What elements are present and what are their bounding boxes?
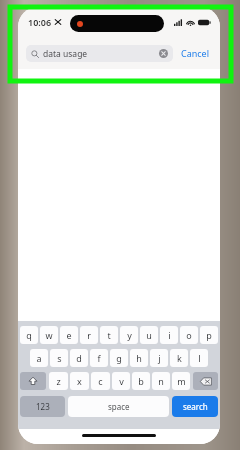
button[interactable]: 123: [20, 396, 65, 417]
staticText: i: [168, 329, 171, 341]
button[interactable]: b: [132, 372, 150, 390]
staticText: e: [66, 329, 72, 341]
button[interactable]: Clear text: [159, 49, 168, 58]
button[interactable]: a: [30, 349, 48, 367]
button[interactable]: g: [110, 349, 128, 367]
button[interactable]: c: [91, 372, 110, 390]
button[interactable]: j: [150, 349, 168, 367]
button[interactable]: q: [20, 326, 38, 344]
staticText: c: [98, 375, 103, 387]
staticText: t: [107, 329, 111, 341]
staticText: v: [119, 375, 124, 387]
staticText: y: [127, 329, 132, 341]
button[interactable]: m: [172, 372, 190, 390]
button[interactable]: d: [70, 349, 88, 367]
button[interactable]: f: [90, 349, 108, 367]
staticText: x: [77, 375, 82, 387]
button[interactable]: Shift: [20, 372, 46, 390]
button[interactable]: x: [70, 372, 89, 390]
staticText: r: [87, 329, 91, 341]
staticText: s: [57, 352, 62, 364]
button[interactable]: e: [60, 326, 78, 344]
button[interactable]: search: [172, 396, 218, 417]
button[interactable]: v: [112, 372, 130, 390]
button[interactable]: w: [40, 326, 58, 344]
staticText: o: [186, 329, 192, 341]
button[interactable]: k: [170, 349, 188, 367]
button[interactable]: data usage: [26, 45, 173, 62]
staticText: z: [56, 375, 61, 387]
button[interactable]: Backspace: [193, 372, 218, 390]
button[interactable]: i: [160, 326, 178, 344]
button[interactable]: n: [152, 372, 170, 390]
button[interactable]: Cancel: [179, 43, 212, 63]
staticText: g: [116, 352, 122, 364]
staticText: a: [36, 352, 42, 364]
staticText: w: [45, 329, 53, 341]
staticText: Cancel: [181, 47, 210, 59]
staticText: j: [158, 352, 161, 364]
button[interactable]: y: [120, 326, 138, 344]
button[interactable]: s: [50, 349, 68, 367]
staticText: q: [26, 329, 32, 341]
staticText: u: [146, 329, 152, 341]
button[interactable]: p: [200, 326, 218, 344]
staticText: h: [136, 352, 142, 364]
staticText: f: [97, 352, 101, 364]
button[interactable]: r: [80, 326, 98, 344]
button[interactable]: o: [180, 326, 198, 344]
staticText: 123: [36, 401, 50, 412]
staticText: m: [177, 375, 186, 387]
staticText: data usage: [43, 48, 88, 60]
staticText: k: [177, 352, 182, 364]
staticText: b: [138, 375, 144, 387]
staticText: 10:06: [28, 16, 52, 28]
button[interactable]: t: [100, 326, 118, 344]
button[interactable]: z: [49, 372, 68, 390]
staticText: d: [76, 352, 82, 364]
button[interactable]: h: [130, 349, 148, 367]
button[interactable]: l: [190, 349, 208, 367]
staticText: space: [108, 401, 130, 412]
staticText: search: [183, 401, 208, 412]
staticText: p: [206, 329, 212, 341]
button[interactable]: u: [140, 326, 158, 344]
staticText: l: [198, 352, 201, 364]
button[interactable]: space: [68, 396, 169, 417]
staticText: n: [158, 375, 164, 387]
